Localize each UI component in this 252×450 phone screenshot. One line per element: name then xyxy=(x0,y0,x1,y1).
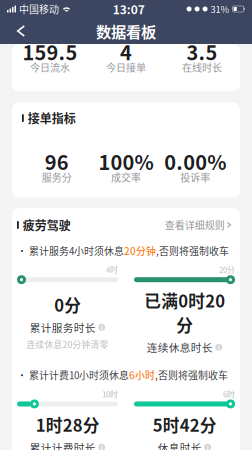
staticText: 数据看板 xyxy=(96,20,156,42)
staticText: 13:07 xyxy=(113,0,145,18)
staticText: 4时 xyxy=(106,264,118,275)
staticText: 31% xyxy=(211,2,230,16)
staticText: 休息时长 xyxy=(158,440,202,450)
staticText: 累计计费时长 xyxy=(30,440,96,450)
staticText: 疲劳驾驶 xyxy=(23,216,71,234)
button[interactable]: 返回 xyxy=(4,18,38,44)
staticText: 成交率 xyxy=(111,170,141,184)
staticText: 6时 xyxy=(223,388,235,399)
staticText: 查看详细规则 xyxy=(165,218,225,232)
staticText: • 累计计费10小时须休息6小时,否则将强制收车 xyxy=(17,368,228,382)
staticText: 5时42分 xyxy=(152,412,216,436)
staticText: 已满0时20分 xyxy=(144,288,225,336)
staticText: 100% xyxy=(98,147,153,176)
staticText: 96 xyxy=(45,147,69,176)
staticText: 连续休息20分钟清零 xyxy=(26,338,108,350)
staticText: 今日流水 xyxy=(30,60,70,74)
staticText: 159.5 xyxy=(22,37,77,66)
staticText: 投诉率 xyxy=(180,170,210,184)
button[interactable]: 查看详细规则 xyxy=(165,218,231,232)
staticText: 今日接单 xyxy=(106,60,146,74)
staticText: 3.5 xyxy=(186,37,217,66)
staticText: 20分 xyxy=(219,264,235,275)
staticText: 累计服务时长 xyxy=(30,320,96,335)
staticText: 接单指标 xyxy=(28,109,76,127)
staticText: 在线时长 xyxy=(182,60,222,74)
staticText: 连续休息时长 xyxy=(147,339,213,355)
staticText: 0.00% xyxy=(164,147,226,176)
staticText: 服务分 xyxy=(42,170,72,184)
staticText: • 累计服务4小时须休息20分钟,否则将强制收车 xyxy=(17,244,229,258)
staticText: 0分 xyxy=(54,292,81,317)
staticText: 1时28分 xyxy=(35,412,99,436)
staticText: 4 xyxy=(120,37,132,66)
staticText: 10时 xyxy=(102,388,118,399)
staticText: 中国移动 xyxy=(19,2,59,16)
